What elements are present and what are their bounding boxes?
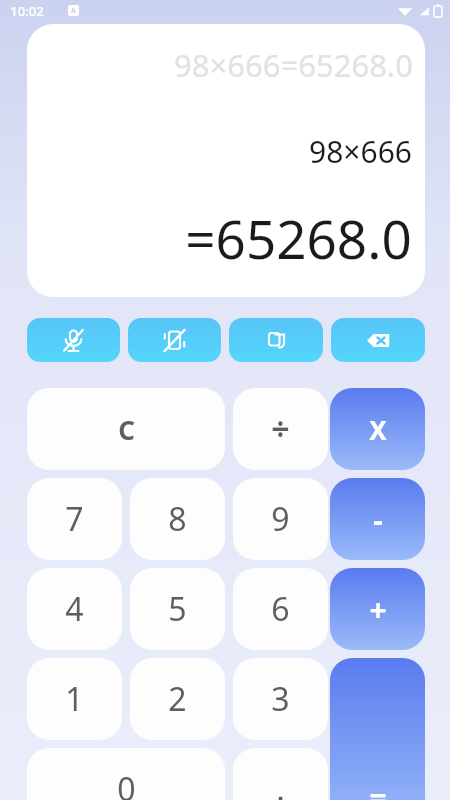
button[interactable]: = [330, 658, 425, 800]
staticText: 5 [168, 587, 187, 631]
staticText: =65268.0 [185, 202, 412, 274]
button[interactable]: 1 [27, 658, 122, 740]
button[interactable]: 4 [27, 568, 122, 650]
staticText: ÷ [271, 407, 290, 451]
button[interactable]: 0 [27, 748, 225, 800]
button[interactable]: Mute microphone [27, 318, 120, 362]
staticText: 7 [65, 497, 84, 541]
button[interactable]: 8 [130, 478, 225, 560]
button[interactable]: . [233, 748, 328, 800]
button[interactable]: Backspace [331, 318, 425, 362]
staticText: 98×666 [309, 131, 412, 172]
staticText: 1 [65, 677, 84, 721]
staticText: = [369, 777, 387, 800]
staticText: 98×666=65268.0 [174, 44, 413, 86]
button[interactable]: + [330, 568, 425, 650]
staticText: 0 [117, 767, 136, 800]
button[interactable]: C [27, 388, 225, 470]
staticText: 10:02 [10, 2, 44, 20]
button[interactable]: 3 [233, 658, 328, 740]
staticText: 4 [65, 587, 84, 631]
staticText: . [276, 767, 285, 800]
staticText: C [118, 412, 135, 447]
staticText: 2 [168, 677, 187, 721]
button[interactable]: 7 [27, 478, 122, 560]
button[interactable]: 9 [233, 478, 328, 560]
button[interactable]: 6 [233, 568, 328, 650]
staticText: + [369, 589, 387, 630]
staticText: 3 [271, 677, 290, 721]
button[interactable]: 5 [130, 568, 225, 650]
staticText: 8 [168, 497, 187, 541]
button[interactable]: ÷ [233, 388, 328, 470]
button[interactable]: Copy result [229, 318, 323, 362]
button[interactable]: - [330, 478, 425, 560]
button[interactable]: Vibrate off [128, 318, 221, 362]
staticText: - [373, 499, 383, 540]
button[interactable]: X [330, 388, 425, 470]
staticText: A [71, 6, 76, 16]
staticText: X [369, 412, 387, 447]
button[interactable]: 2 [130, 658, 225, 740]
staticText: 6 [271, 587, 290, 631]
staticText: 9 [271, 497, 290, 541]
